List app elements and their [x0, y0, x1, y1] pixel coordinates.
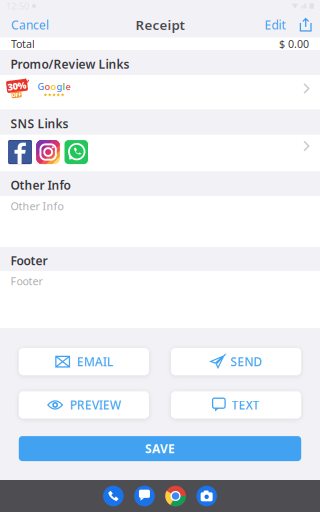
staticText: TEXT — [232, 397, 260, 413]
staticText: Cancel — [11, 17, 49, 33]
staticText: o — [50, 80, 56, 93]
staticText: 12:50 — [6, 0, 29, 12]
staticText: Footer — [10, 274, 42, 288]
staticText: PREVIEW — [70, 397, 121, 413]
button[interactable]: Cancel — [0, 12, 60, 37]
button[interactable]: Phone — [103, 486, 124, 506]
button[interactable]: Edit — [258, 12, 291, 37]
staticText: Edit — [264, 17, 285, 33]
staticText: Receipt — [135, 16, 184, 34]
staticText: G — [37, 80, 44, 93]
button[interactable]: Share — [291, 12, 320, 37]
button[interactable]: Messages — [134, 486, 155, 506]
staticText: EMAIL — [77, 354, 113, 370]
button[interactable]: TEXT — [171, 391, 301, 419]
staticText: o — [44, 80, 50, 93]
staticText: SEND — [230, 354, 262, 370]
staticText: $ 0.00 — [279, 37, 309, 51]
staticText: OFF — [11, 91, 21, 98]
staticText: Footer — [10, 252, 47, 268]
staticText: e — [65, 80, 70, 93]
button[interactable]: EMAIL — [19, 348, 149, 375]
button[interactable]: SEND — [171, 348, 301, 375]
button[interactable]: Chrome — [165, 486, 186, 506]
staticText: Other Info — [10, 177, 70, 193]
button[interactable]: SAVE — [19, 436, 301, 461]
button[interactable]: PREVIEW — [19, 391, 149, 419]
staticText: Total — [11, 37, 35, 51]
button[interactable]: 30% — [0, 75, 320, 109]
staticText: SAVE — [145, 441, 175, 456]
staticText: Promo/Review Links — [10, 56, 129, 72]
staticText: Other Info — [10, 199, 63, 213]
button[interactable] — [0, 135, 320, 171]
staticText: SNS Links — [10, 116, 68, 131]
staticText: l — [62, 80, 65, 93]
staticText: g — [56, 80, 62, 93]
button[interactable]: Camera — [196, 486, 217, 506]
staticText: 30% — [7, 80, 26, 92]
